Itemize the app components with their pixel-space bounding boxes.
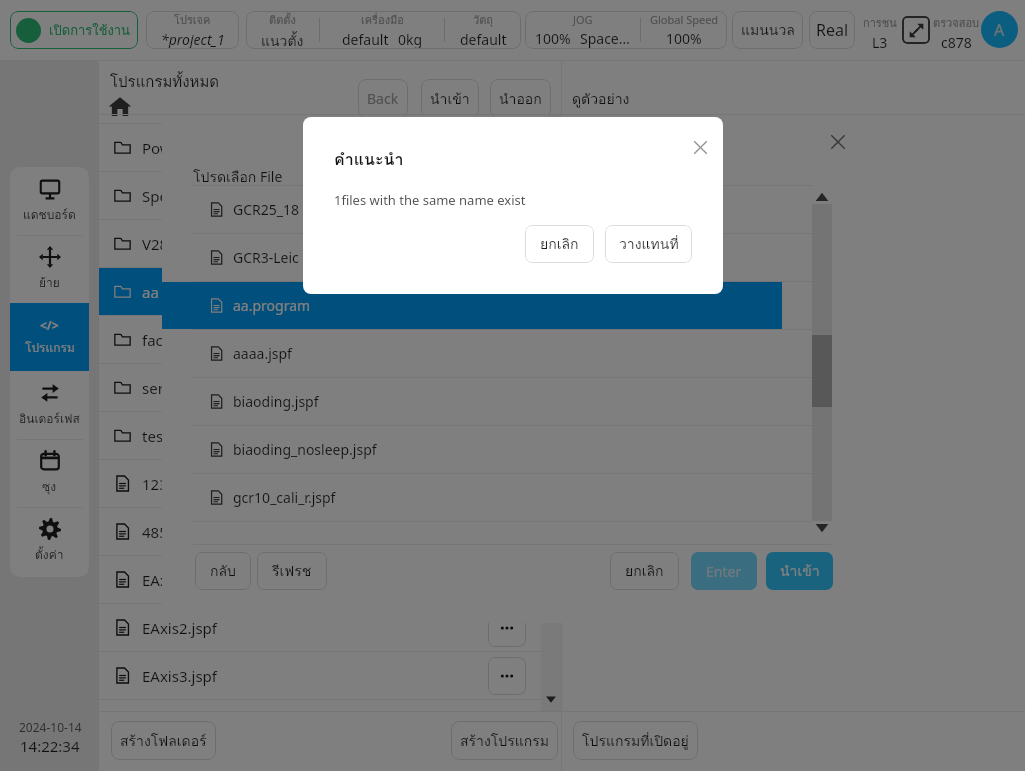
button[interactable]: ตั้งค่า — [10, 507, 89, 575]
staticText: *project_1 — [161, 30, 225, 49]
staticText: biaoding.jspf — [233, 392, 319, 411]
button[interactable]: Real — [809, 11, 855, 49]
staticText: 100% — [535, 29, 571, 48]
button[interactable]: JOG — [525, 11, 727, 49]
button[interactable]: V28 — [99, 220, 541, 267]
staticText: Global Speed — [650, 12, 719, 27]
button[interactable]: A — [981, 11, 1018, 48]
staticText: EAxis1.jspf — [142, 570, 217, 590]
staticText: รีเฟรช — [272, 560, 312, 582]
staticText: เครื่องมือ — [361, 11, 404, 28]
staticText: L3 — [872, 33, 888, 52]
staticText: ยกเลิก — [540, 233, 579, 255]
button[interactable]: </> — [10, 303, 89, 371]
staticText: V28 — [142, 234, 169, 254]
staticText: อินเตอร์เฟส — [19, 409, 80, 428]
button[interactable]: EAxis3.jspf — [99, 652, 541, 699]
staticText: ย้าย — [39, 273, 60, 292]
staticText: แนวตั้ง — [261, 30, 304, 49]
staticText: fac — [142, 330, 163, 350]
button[interactable]: Close dialog — [823, 127, 853, 157]
button[interactable]: aa.program — [193, 282, 813, 329]
button[interactable]: GCR25_18 — [193, 186, 813, 233]
staticText: Pow — [142, 138, 172, 158]
button[interactable]: aa — [99, 268, 541, 315]
staticText: ตรวจสอบ — [933, 14, 979, 31]
staticText: โปรแกรมที่เปิดอยู่ — [582, 730, 689, 752]
button[interactable]: สร้างโปรแกรม — [451, 721, 558, 760]
staticText: ดูตัวอย่าง — [572, 88, 630, 110]
staticText: ซุง — [42, 477, 57, 496]
button[interactable]: เปิดการใช้งาน — [10, 11, 138, 49]
button[interactable]: วางแทนที่ — [605, 225, 692, 263]
button[interactable]: gcr10_cali_r.jspf — [193, 474, 813, 521]
staticText: ser — [142, 378, 164, 398]
staticText: </> — [40, 317, 59, 333]
button[interactable]: EAxis1.jspf — [99, 556, 541, 603]
button[interactable]: ติดตั้ง — [246, 11, 521, 49]
button[interactable]: More options — [488, 321, 526, 359]
button[interactable]: Pow — [99, 124, 541, 171]
button[interactable]: นำเข้า — [421, 79, 479, 118]
button[interactable]: GCR3-Leic — [193, 234, 813, 281]
button[interactable]: test — [99, 412, 541, 459]
staticText: เปิดการใช้งาน — [49, 20, 130, 41]
button[interactable]: More options — [488, 609, 526, 647]
button[interactable]: อินเตอร์เฟส — [10, 371, 89, 439]
button[interactable]: นำออก — [490, 79, 551, 118]
button[interactable]: แมนนวล — [732, 11, 803, 49]
button[interactable]: More options — [488, 273, 526, 311]
button[interactable]: โปรเจค — [146, 11, 239, 49]
button[interactable]: รีเฟรช — [257, 552, 327, 590]
staticText: 2024-10-14 — [19, 719, 82, 735]
button[interactable]: More options — [488, 657, 526, 695]
button[interactable]: fac — [99, 316, 541, 363]
staticText: วางแทนที่ — [619, 233, 679, 255]
button[interactable]: EAxis2.jspf — [99, 604, 541, 651]
button[interactable]: ยกเลิก — [525, 225, 594, 263]
button[interactable]: More options — [488, 177, 526, 215]
button[interactable]: biaoding.jspf — [193, 378, 813, 425]
button[interactable]: 485 — [99, 508, 541, 555]
staticText: สร้างโปรแกรม — [460, 730, 549, 752]
button[interactable]: Enter — [691, 552, 757, 590]
staticText: aa.program — [233, 296, 311, 315]
staticText: นำเข้า — [780, 560, 820, 582]
staticText: default — [342, 30, 389, 49]
button[interactable]: Back — [358, 79, 408, 118]
staticText: EAxis2.jspf — [142, 618, 217, 638]
button[interactable]: ย้าย — [10, 235, 89, 303]
button[interactable]: aaaa.jspf — [193, 330, 813, 377]
staticText: แมนนวล — [741, 19, 795, 41]
staticText: แดชบอร์ด — [23, 205, 76, 224]
staticText: โปรแกรมทั้งหมด — [110, 70, 220, 94]
button[interactable]: นำเข้า — [766, 552, 833, 590]
button[interactable]: สร้างโฟลเดอร์ — [111, 721, 216, 760]
button[interactable]: Close — [687, 134, 713, 160]
button[interactable]: 123 — [99, 460, 541, 507]
button[interactable]: โปรแกรมที่เปิดอยู่ — [573, 721, 698, 760]
button[interactable]: ตรวจสอบ — [933, 14, 979, 52]
button[interactable]: กลับ — [195, 552, 251, 590]
button[interactable]: Spe — [99, 172, 541, 219]
button[interactable]: ซุง — [10, 439, 89, 507]
staticText: 1files with the same name exist — [334, 191, 526, 209]
button[interactable]: ยกเลิก — [610, 552, 679, 590]
button[interactable]: Expand view — [902, 16, 930, 44]
button[interactable]: ser — [99, 364, 541, 411]
staticText: โปรแกรม — [25, 338, 75, 357]
button[interactable]: แดชบอร์ด — [10, 167, 89, 235]
staticText: 485 — [142, 522, 168, 542]
staticText: c878 — [941, 33, 972, 52]
button[interactable]: การชน — [862, 14, 898, 52]
staticText: กลับ — [210, 560, 236, 582]
button[interactable]: biaoding_nosleep.jspf — [193, 426, 813, 473]
button[interactable]: More options — [488, 225, 526, 263]
staticText: โปรเจค — [174, 11, 211, 28]
